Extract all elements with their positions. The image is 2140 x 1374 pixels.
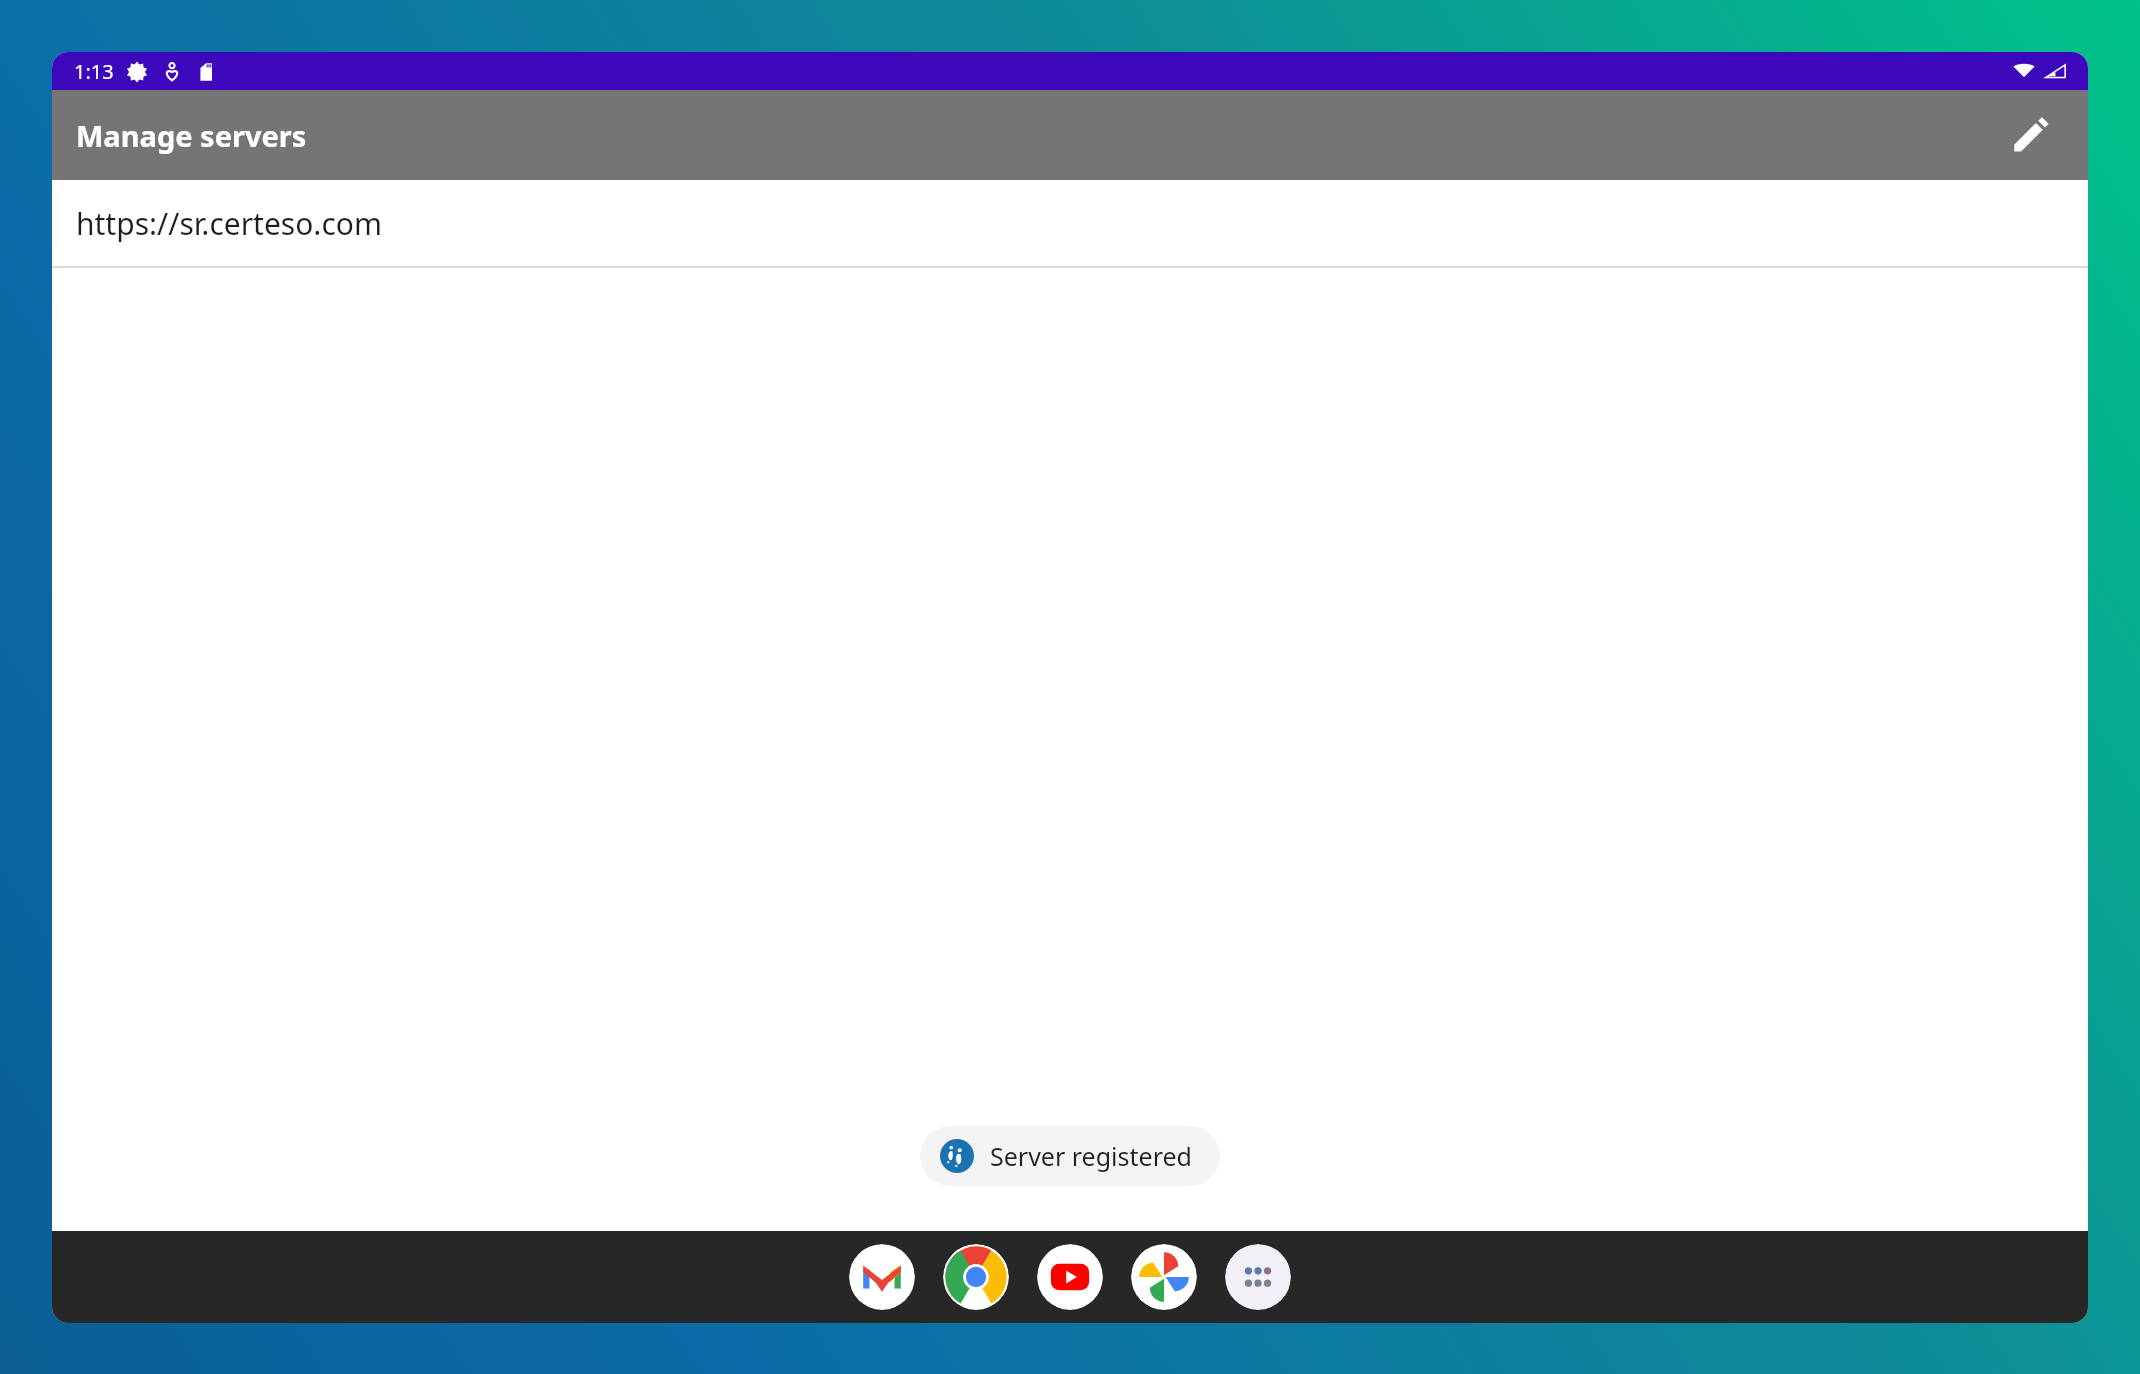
button[interactable]: Server registered xyxy=(920,1126,1220,1186)
staticText: Manage servers xyxy=(76,116,307,155)
staticText: https://sr.certeso.com xyxy=(76,203,382,244)
button[interactable]: https://sr.certeso.com xyxy=(52,180,2088,266)
staticText: Server registered xyxy=(990,1139,1192,1173)
button[interactable]: Google Photos xyxy=(1131,1244,1197,1310)
button[interactable]: Gmail xyxy=(849,1244,915,1310)
staticText: 1:13 xyxy=(74,58,114,85)
button[interactable]: Edit xyxy=(1998,103,2062,167)
button[interactable]: All apps xyxy=(1225,1244,1291,1310)
button[interactable]: Chrome xyxy=(943,1244,1009,1310)
button[interactable]: YouTube xyxy=(1037,1244,1103,1310)
